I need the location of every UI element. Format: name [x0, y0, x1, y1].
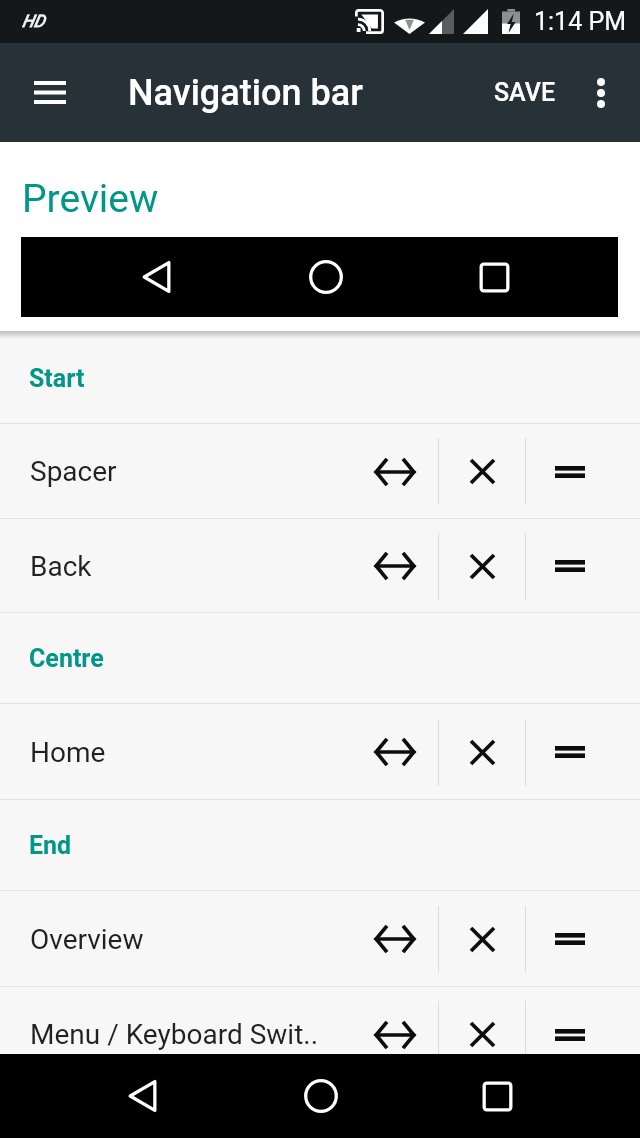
button[interactable]: Menu / Keyboard Swit.. [0, 987, 640, 1054]
button[interactable]: Home [0, 704, 640, 800]
button[interactable]: Resize [351, 891, 438, 987]
staticText: SAVE [494, 78, 556, 107]
button[interactable]: Reorder [526, 987, 613, 1054]
staticText: Centre [29, 644, 104, 673]
staticText: Menu / Keyboard Swit.. [30, 1018, 351, 1051]
staticText: Start [29, 364, 85, 393]
staticText: Preview [22, 176, 159, 222]
staticText: Navigation bar [128, 72, 363, 114]
staticText: Spacer [30, 455, 351, 488]
button[interactable]: Remove [439, 424, 525, 519]
staticText: HD [22, 11, 45, 31]
button[interactable]: Reorder [526, 891, 613, 987]
staticText: End [29, 831, 72, 860]
button[interactable]: Remove [439, 891, 525, 987]
button[interactable]: Resize [351, 704, 438, 800]
staticText: Overview [30, 923, 351, 956]
button[interactable]: Remove [439, 704, 525, 800]
button[interactable]: Remove [439, 519, 525, 613]
button[interactable]: Remove [439, 987, 525, 1054]
button[interactable]: Open navigation menu [0, 43, 100, 142]
button[interactable]: More options [572, 43, 630, 142]
button[interactable]: Reorder [526, 424, 613, 519]
staticText: 1:14 PM [534, 7, 627, 36]
button[interactable]: Back [0, 519, 640, 613]
button[interactable]: Spacer [0, 424, 640, 519]
staticText: Home [30, 736, 351, 769]
button[interactable]: Overview [0, 891, 640, 987]
button[interactable]: Reorder [526, 704, 613, 800]
button[interactable]: Reorder [526, 519, 613, 613]
button[interactable]: Back [82, 1054, 203, 1138]
button[interactable]: Resize [351, 424, 438, 519]
button[interactable]: Overview [437, 1054, 558, 1138]
button[interactable]: SAVE [478, 43, 572, 142]
staticText: Back [30, 550, 351, 583]
button[interactable]: Resize [351, 519, 438, 613]
button[interactable]: Resize [351, 987, 438, 1054]
button[interactable]: Home [260, 1054, 381, 1138]
